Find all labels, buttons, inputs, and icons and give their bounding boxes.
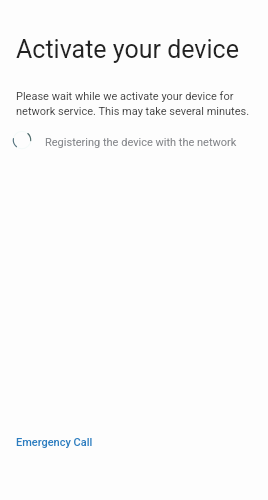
staticText: Registering the device with the network: [45, 136, 237, 149]
staticText: Emergency Call: [16, 436, 93, 449]
other: Loading: [13, 131, 31, 149]
staticText: Please wait while we activate your devic…: [16, 89, 252, 119]
button[interactable]: Emergency Call: [0, 432, 105, 455]
staticText: Activate your device: [16, 35, 239, 64]
